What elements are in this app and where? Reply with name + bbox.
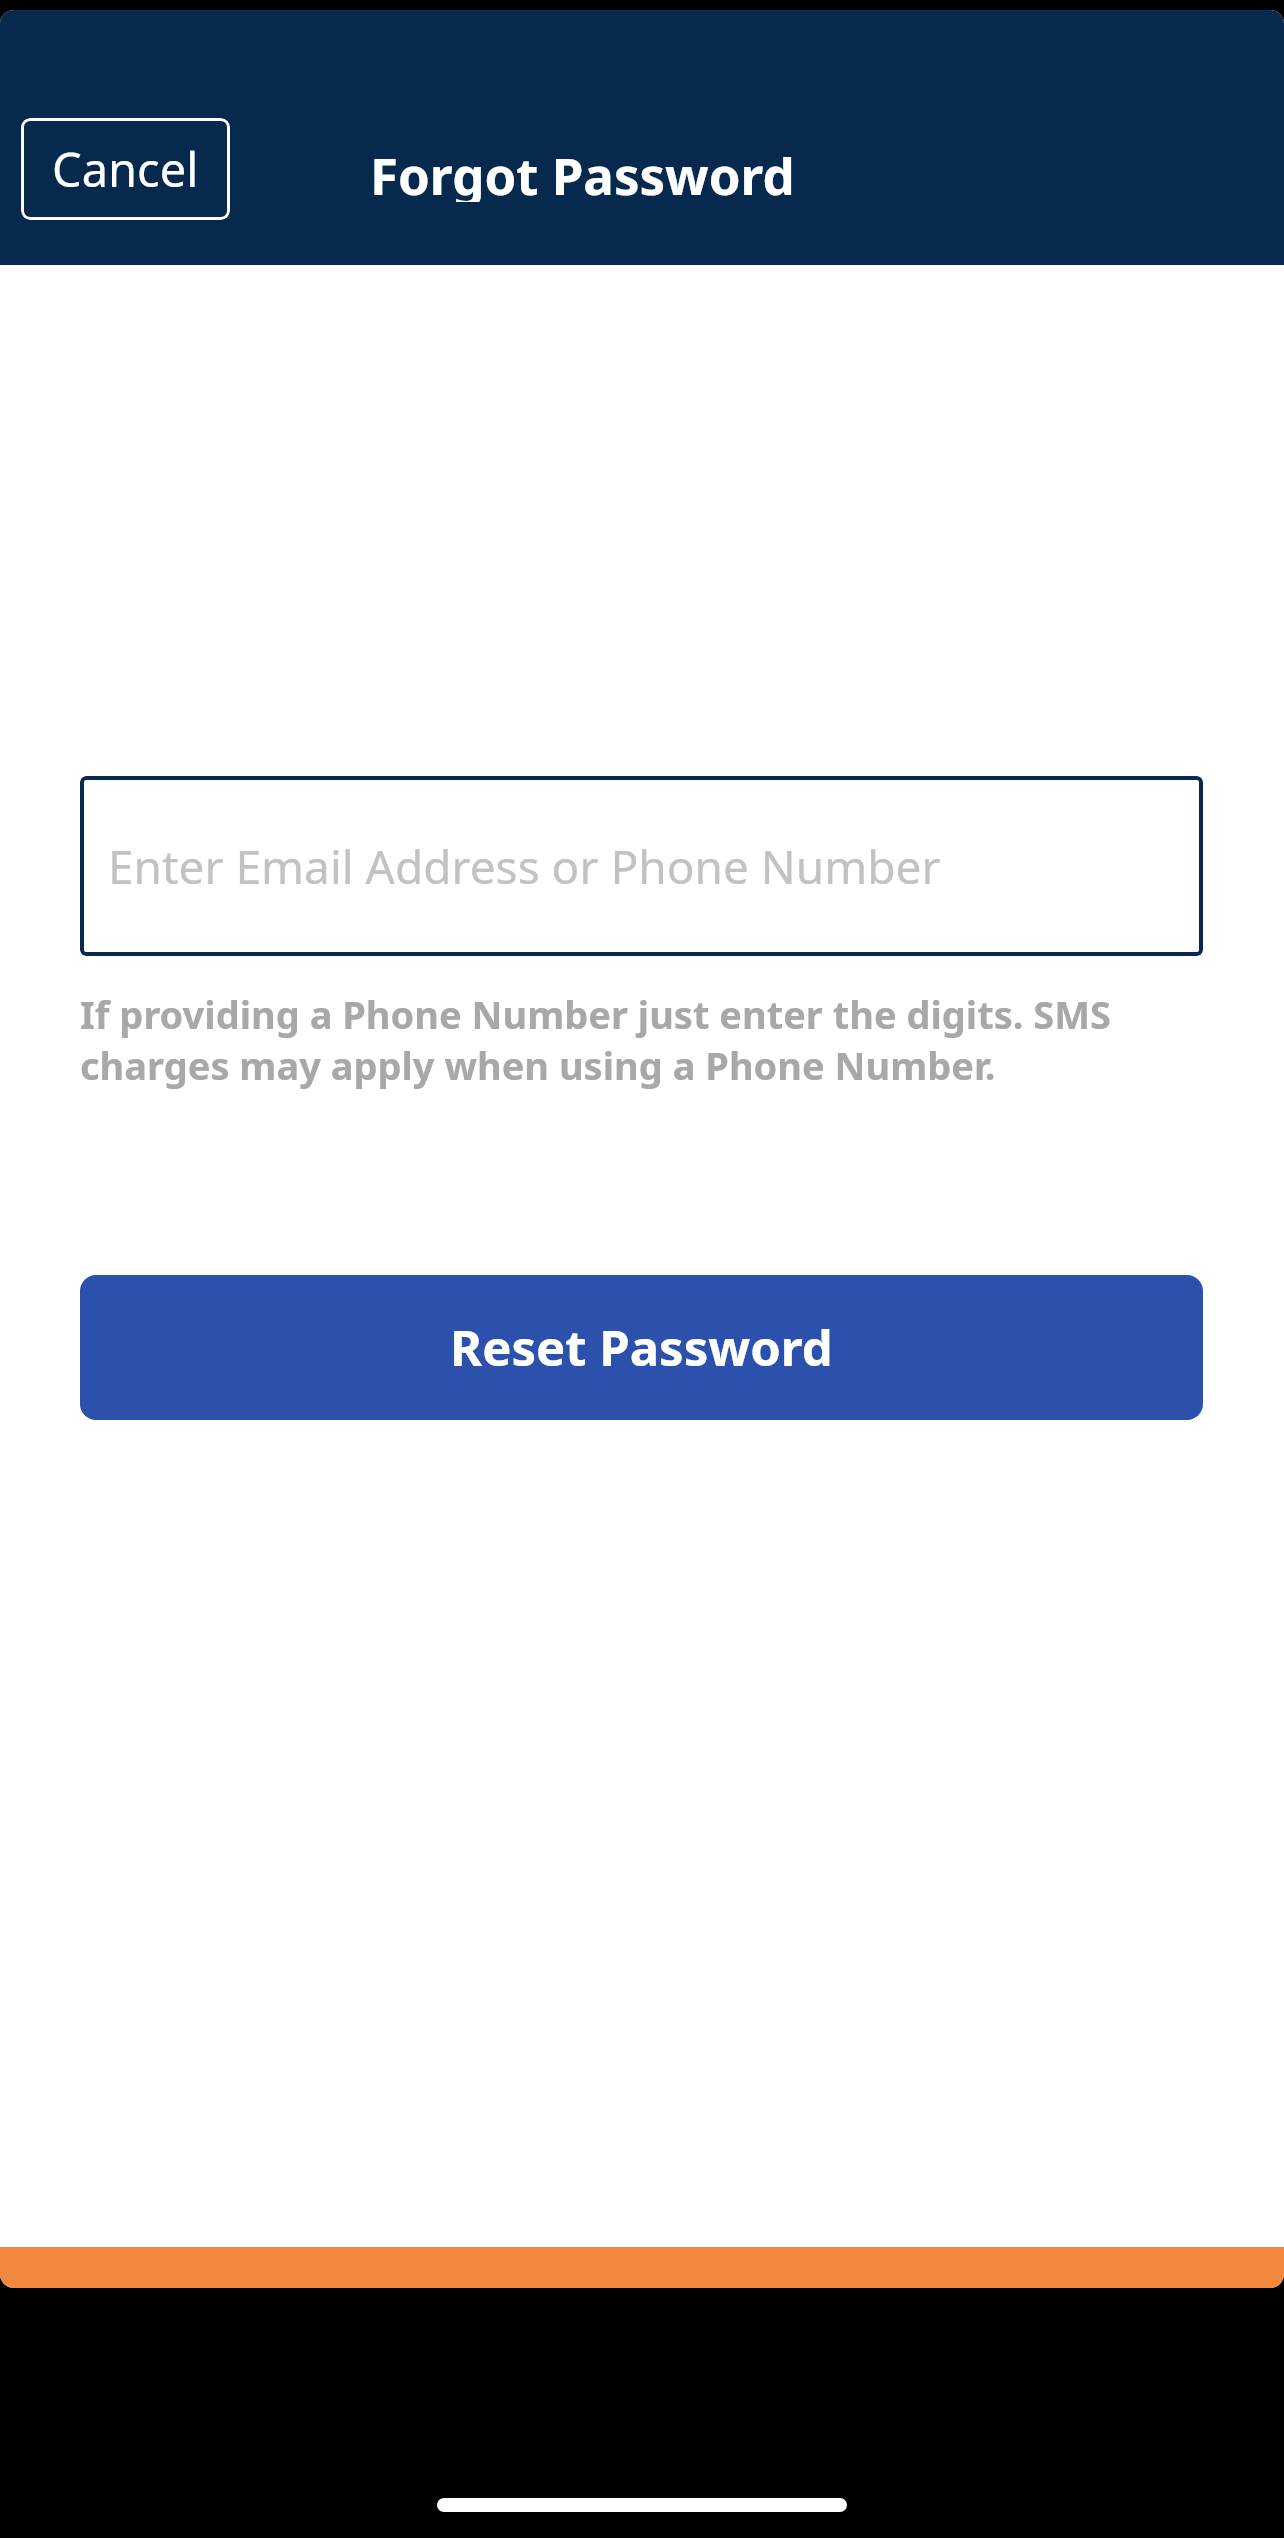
staticText: Enter Email Address or Phone Number [108,835,941,898]
button[interactable]: Reset Password [80,1275,1203,1420]
button[interactable]: Cancel [21,118,230,220]
staticText: If providing a Phone Number just enter t… [80,988,1210,1091]
staticText: Forgot Password [370,140,795,202]
button[interactable]: Email or phone number field [80,776,1203,956]
staticText: Reset Password [450,1314,833,1381]
staticText: Cancel [52,137,199,201]
